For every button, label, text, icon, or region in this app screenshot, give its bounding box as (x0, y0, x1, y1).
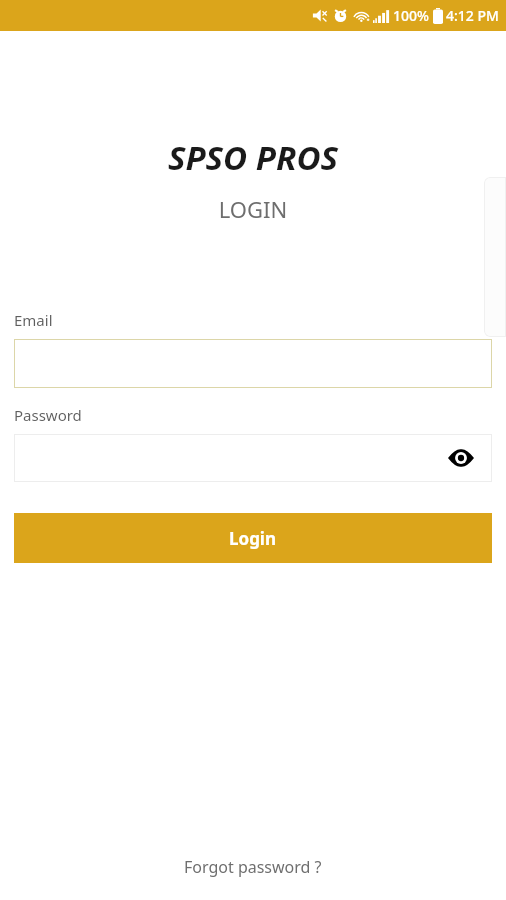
staticText: Forgot password ? (184, 856, 322, 878)
staticText: LOGIN (0, 194, 506, 224)
button[interactable]: Show password (14, 434, 492, 482)
staticText: Email (14, 310, 53, 330)
button[interactable] (14, 339, 492, 388)
staticText: Login (229, 527, 277, 550)
button[interactable]: Login (14, 513, 492, 563)
staticText: 100% (393, 6, 429, 25)
button[interactable]: Forgot password ? (172, 850, 334, 884)
staticText: 4:12 PM (446, 6, 499, 25)
staticText: Password (14, 405, 82, 425)
button[interactable]: Show password (444, 441, 478, 475)
staticText: SPSO PROS (0, 135, 506, 180)
